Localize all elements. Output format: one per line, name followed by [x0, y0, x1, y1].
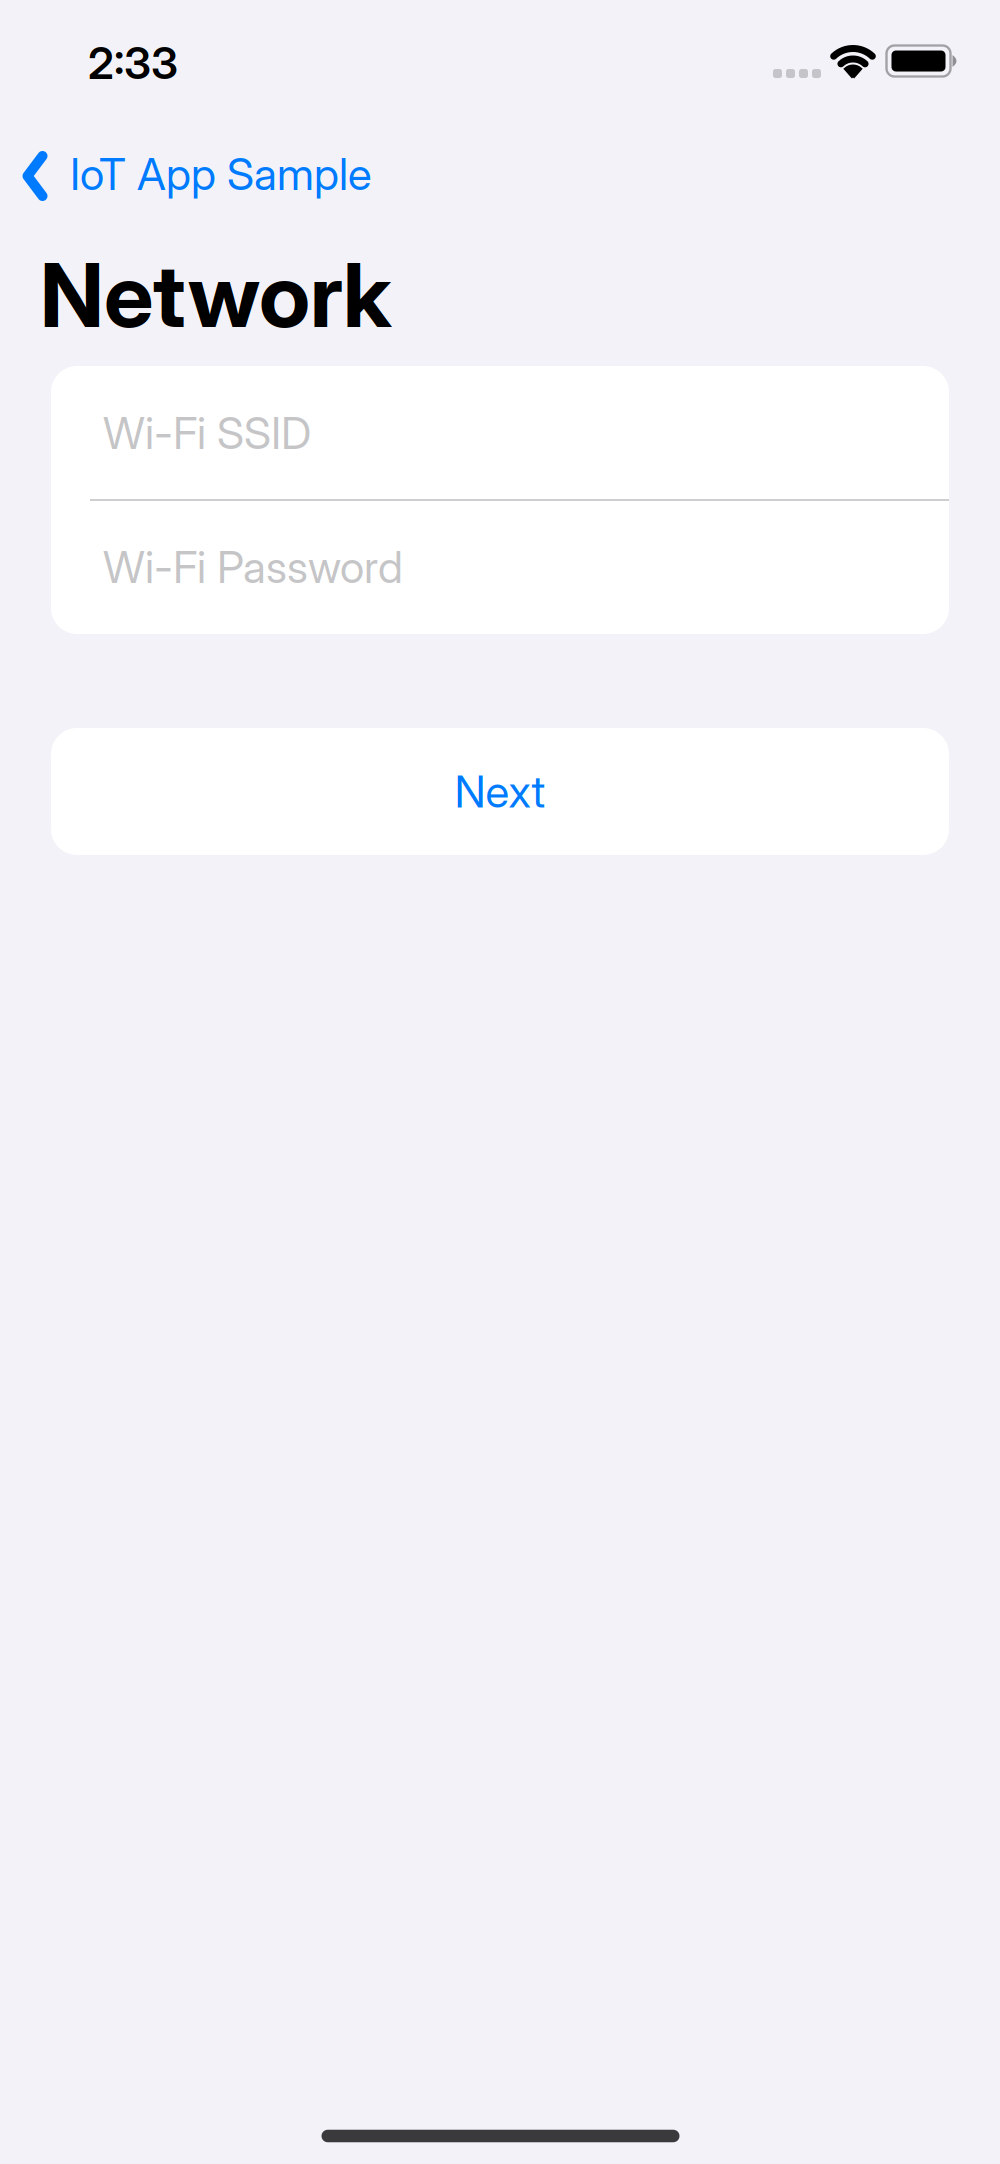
button[interactable]: IoT App Sample [0, 149, 372, 203]
button[interactable]: Wi-Fi SSID [51, 367, 949, 499]
button[interactable]: Next [51, 728, 949, 855]
button[interactable]: Wi-Fi Password [51, 501, 949, 633]
staticText: 2:33 [88, 36, 178, 90]
staticText: Next [454, 765, 545, 818]
staticText: Wi-Fi SSID [103, 406, 311, 460]
staticText: IoT App Sample [70, 147, 372, 201]
staticText: Wi-Fi Password [103, 540, 403, 594]
staticText: Network [40, 242, 391, 348]
